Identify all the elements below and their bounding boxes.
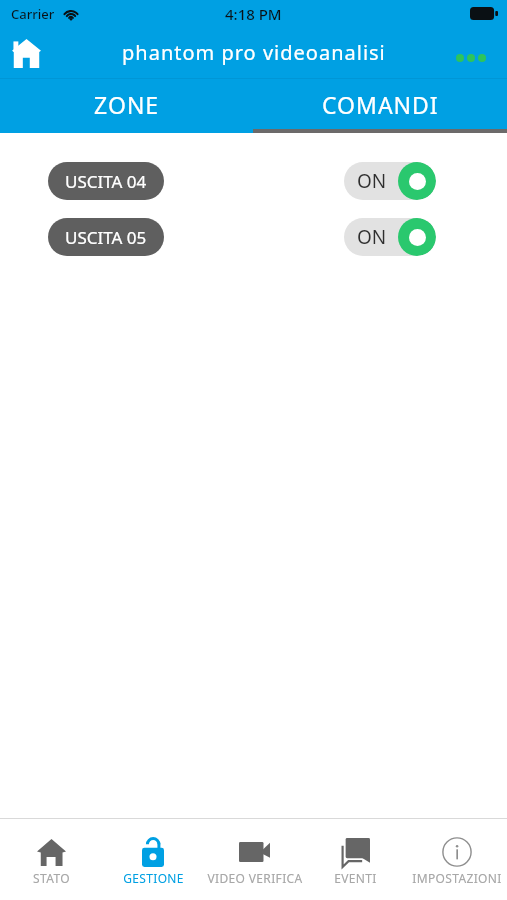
staticText: STATO <box>33 870 70 886</box>
staticText: ZONE <box>94 89 160 120</box>
button[interactable]: COMANDI <box>253 79 507 129</box>
button[interactable]: More options <box>448 30 494 76</box>
staticText: COMANDI <box>322 89 439 120</box>
button[interactable]: STATO <box>0 819 102 900</box>
staticText: USCITA 04 <box>65 170 147 193</box>
button[interactable]: Home <box>3 30 49 76</box>
button[interactable]: USCITA 04 <box>48 162 164 200</box>
button[interactable]: ON <box>344 218 436 256</box>
button[interactable]: ZONE <box>0 79 253 129</box>
button[interactable]: USCITA 05 <box>48 218 164 256</box>
staticText: Carrier <box>11 5 55 23</box>
staticText: USCITA 05 <box>65 226 147 249</box>
button[interactable]: VIDEO VERIFICA <box>204 819 305 900</box>
staticText: GESTIONE <box>123 870 184 886</box>
staticText: 4:18 PM <box>225 4 282 24</box>
button[interactable]: ON <box>344 162 436 200</box>
staticText: phantom pro videoanalisi <box>122 39 386 66</box>
staticText: ON <box>357 224 387 250</box>
staticText: ON <box>357 168 387 194</box>
button[interactable]: EVENTI <box>305 819 406 900</box>
button[interactable]: IMPOSTAZIONI <box>406 819 507 900</box>
button[interactable]: GESTIONE <box>102 819 204 900</box>
staticText: EVENTI <box>334 870 377 886</box>
staticText: IMPOSTAZIONI <box>412 870 502 886</box>
staticText: VIDEO VERIFICA <box>207 870 303 886</box>
